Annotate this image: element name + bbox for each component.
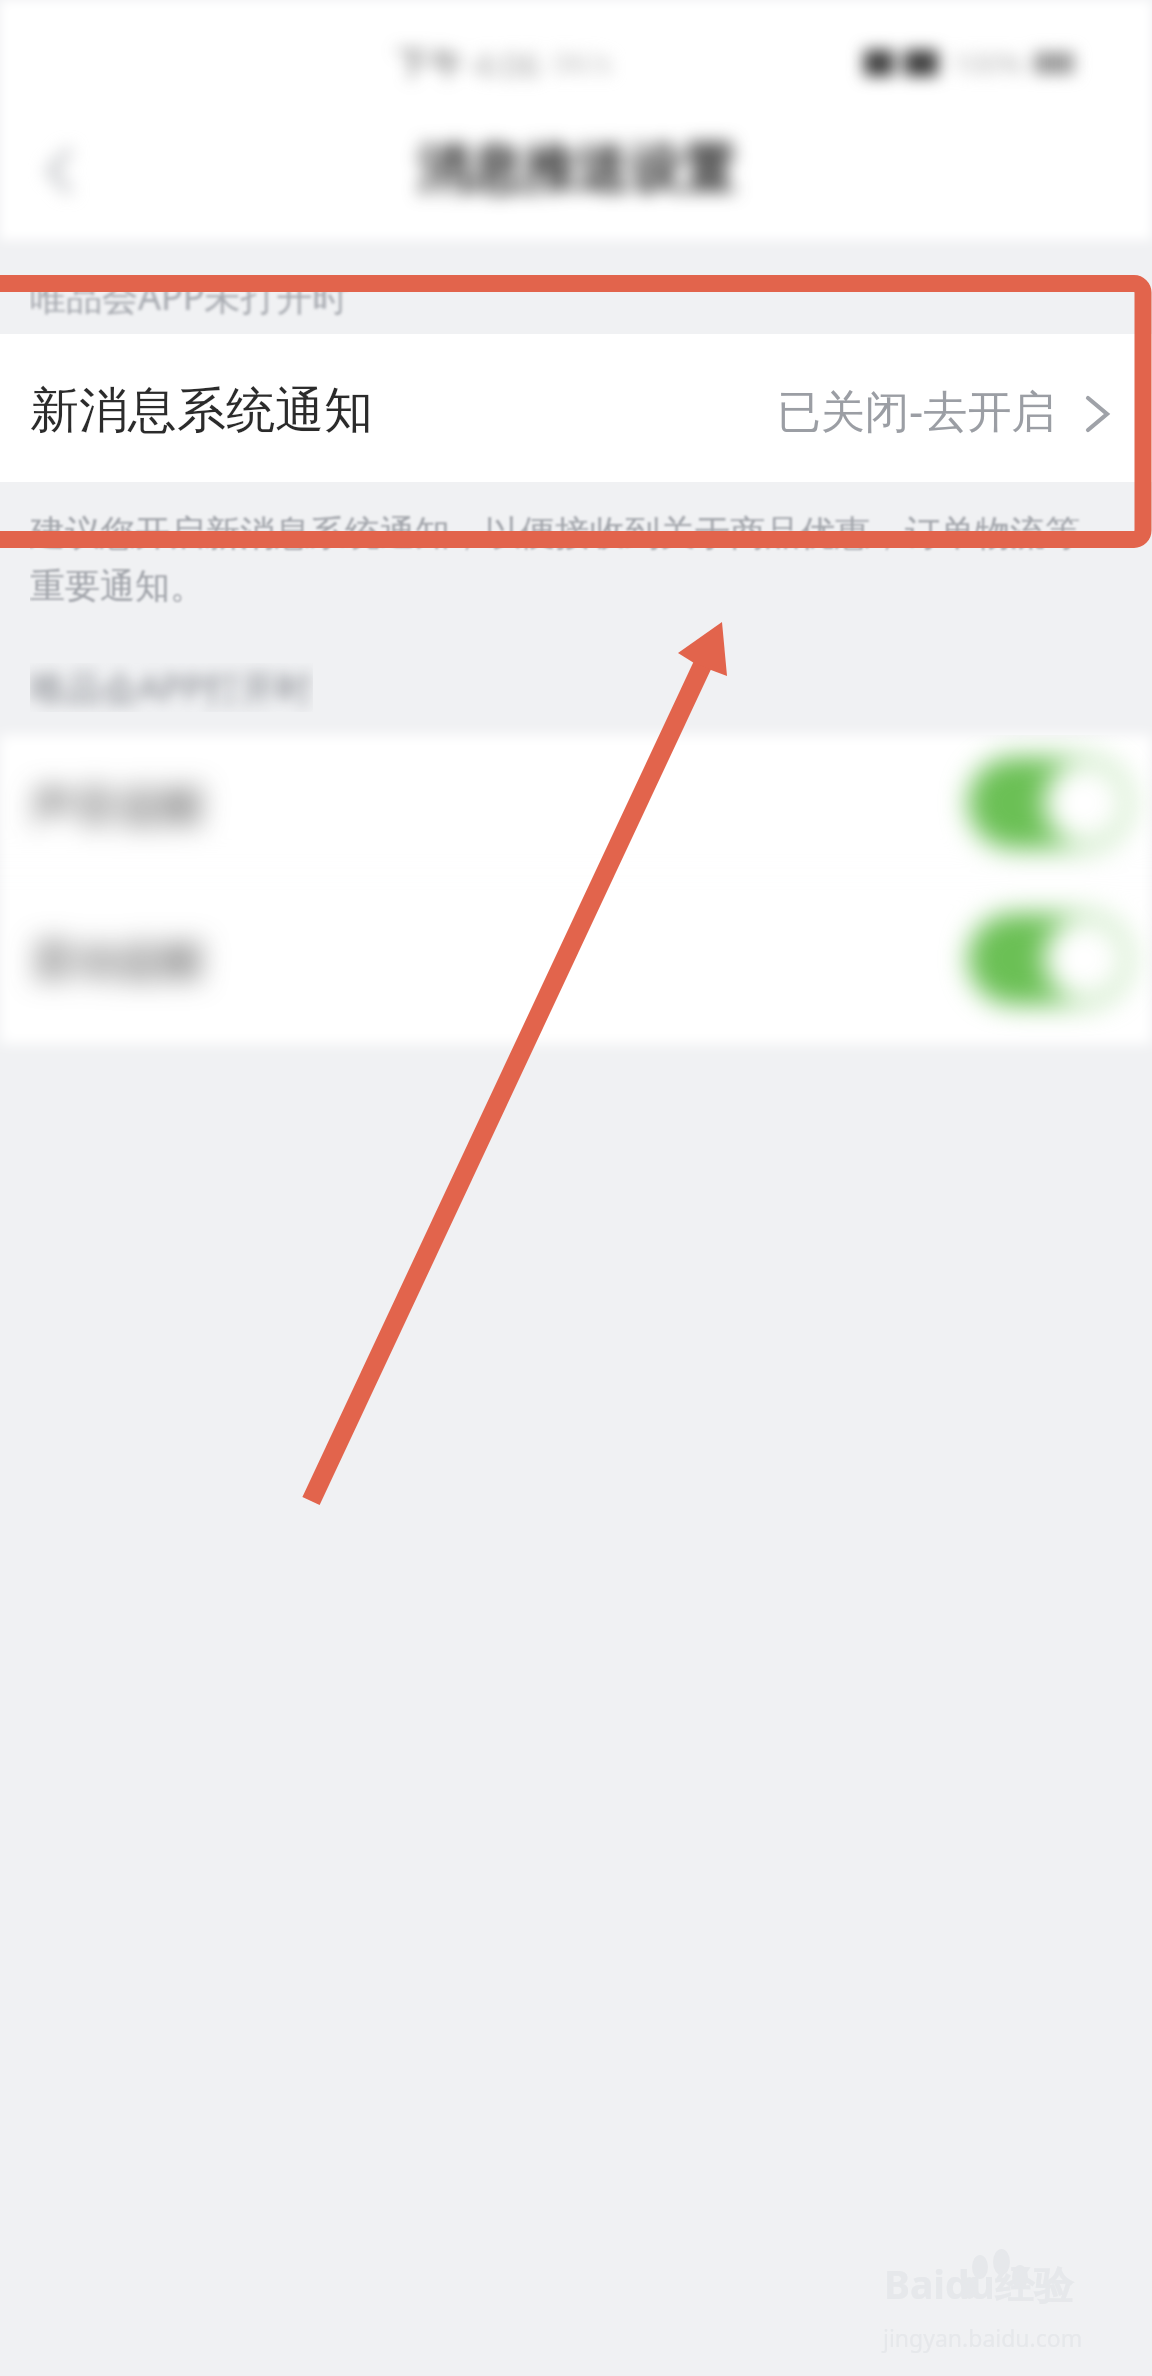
button[interactable]: 声音提醒 <box>0 735 1152 871</box>
staticText: 建议您开启新消息系统通知，以便接收到关于商品优惠，订单物流等重要通知。 <box>30 511 1114 608</box>
staticText: jingyan.baidu.com <box>883 2322 1083 2353</box>
button[interactable]: 震动提醒 switch, on <box>968 913 1130 1005</box>
staticText: Baidu经验 <box>884 2257 1073 2310</box>
staticText: 0K/s <box>553 43 613 82</box>
staticText: 新消息系统通知 <box>30 380 373 442</box>
staticText: 震动提醒 <box>30 934 206 989</box>
staticText: 下午 <box>396 42 464 82</box>
button[interactable]: Back <box>22 134 96 208</box>
staticText: 唯品会APP未打开时 <box>30 272 349 321</box>
staticText: 100% <box>952 44 1024 82</box>
staticText: 已关闭-去开启 <box>777 380 1056 440</box>
staticText: 4:06 <box>473 42 541 82</box>
staticText: 唯品会APP打开时 <box>30 663 313 712</box>
button[interactable]: 声音提醒 switch, on <box>968 757 1130 849</box>
button[interactable]: 新消息系统通知 <box>0 334 1152 482</box>
staticText: 声音提醒 <box>30 779 206 834</box>
button[interactable]: 震动提醒 <box>0 873 1152 1044</box>
staticText: 消息推送设置 <box>417 136 735 203</box>
